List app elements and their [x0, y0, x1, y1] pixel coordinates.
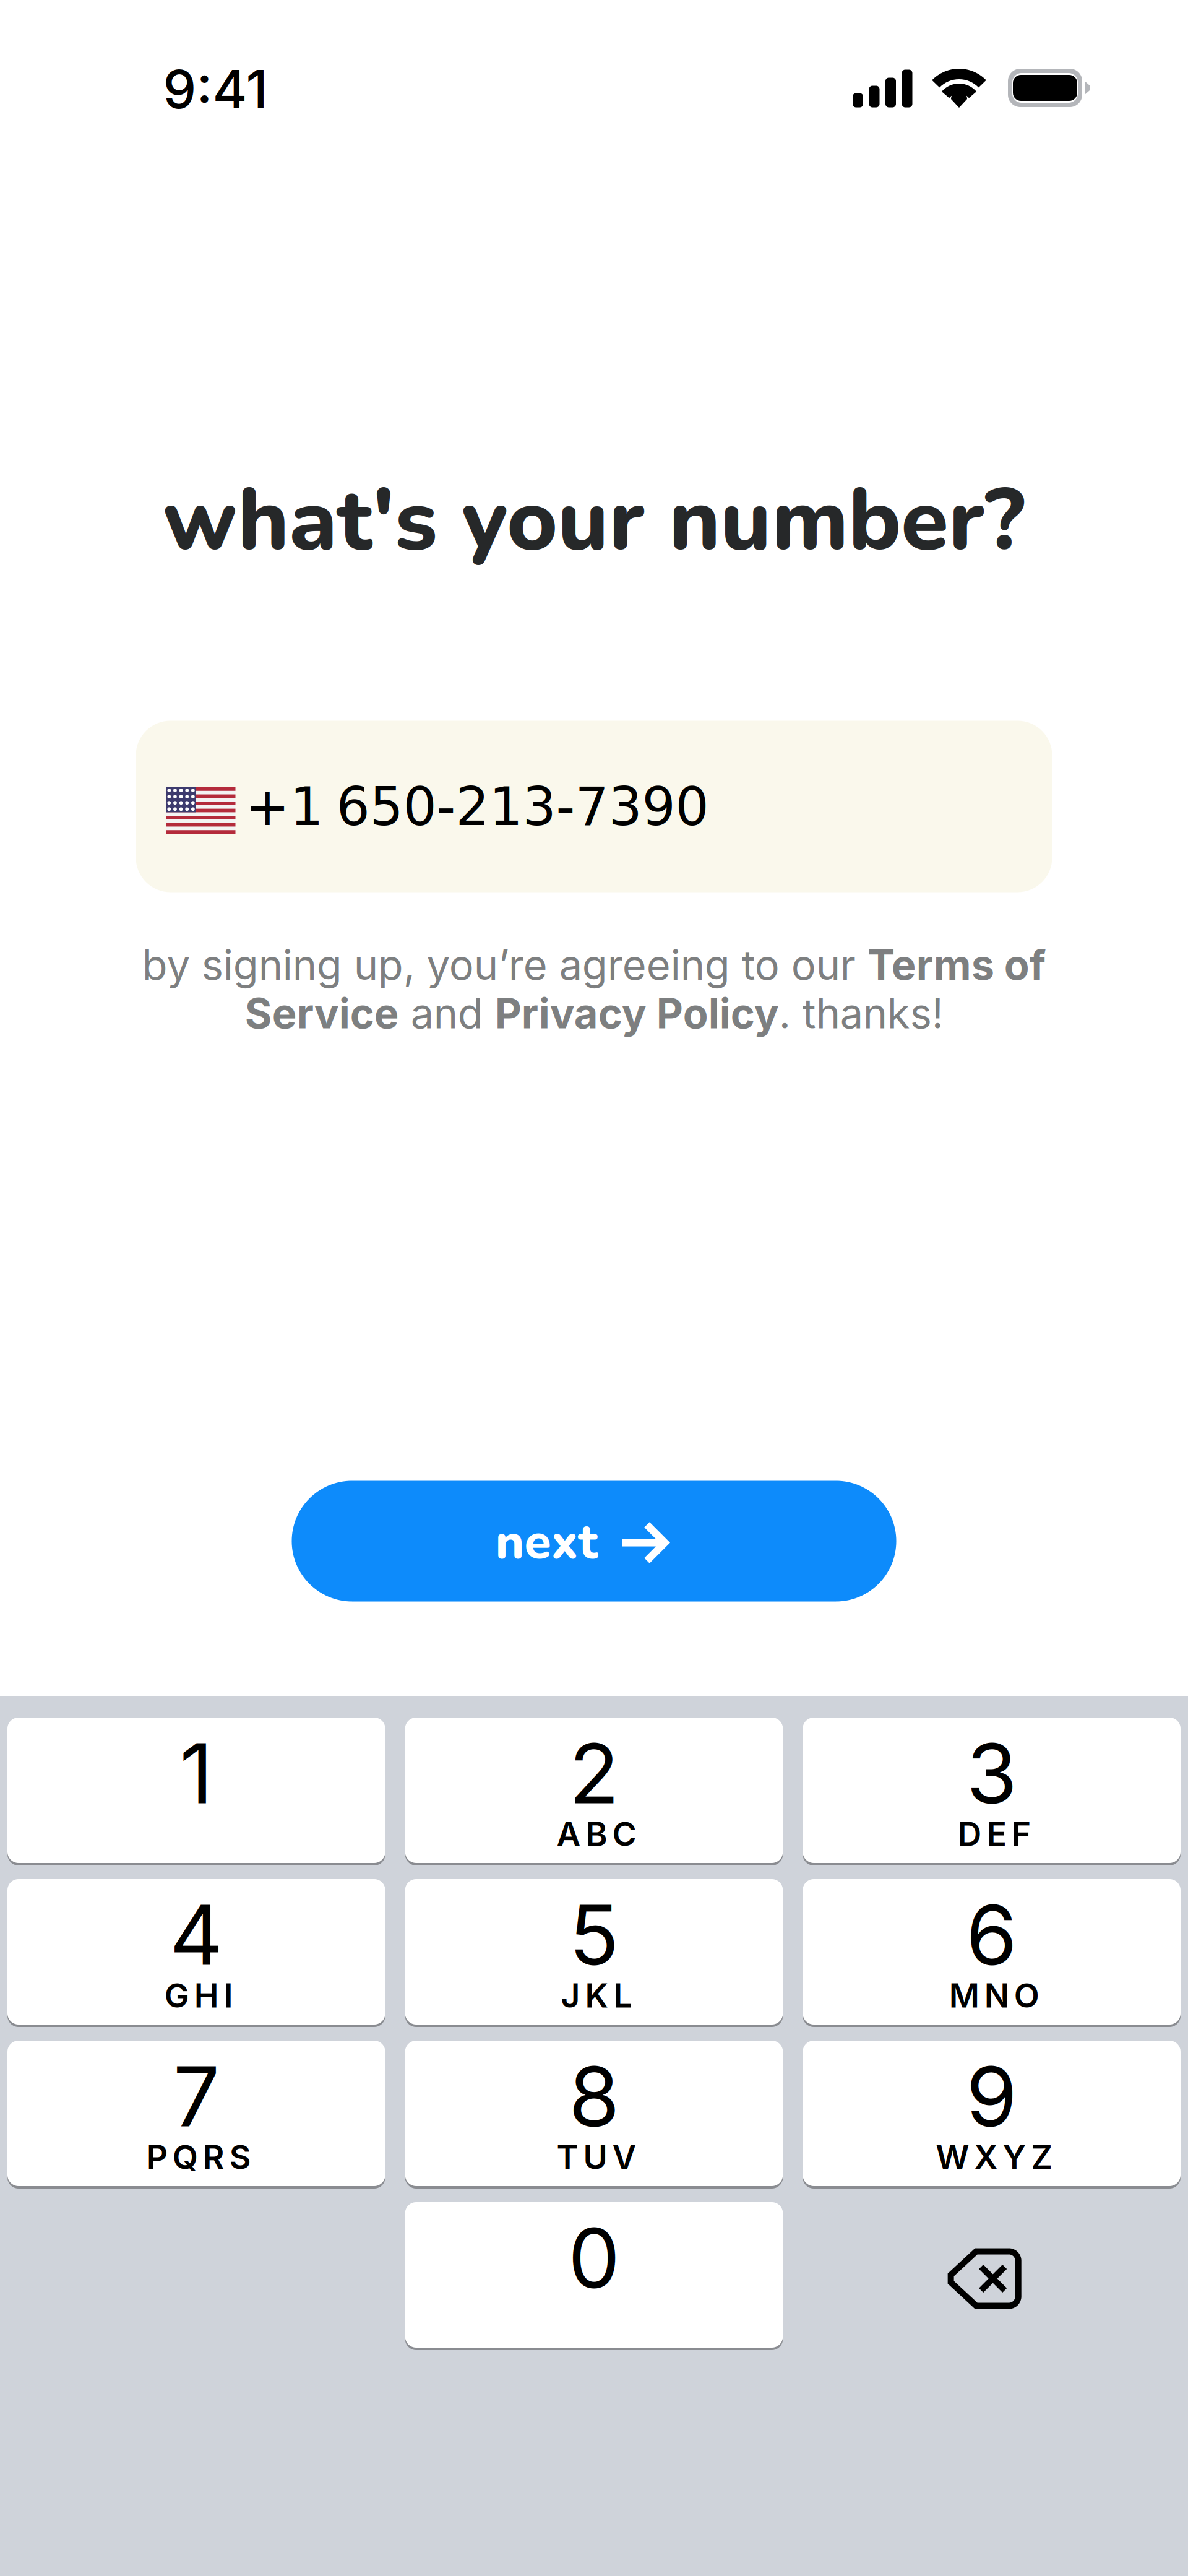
staticText: 3 [966, 1723, 1017, 1823]
button[interactable]: 5 [405, 1879, 783, 2028]
button[interactable]: 8 [405, 2041, 783, 2190]
button[interactable]: 9 [803, 2041, 1181, 2190]
staticText: next [495, 1509, 598, 1575]
button[interactable]: 6 [803, 1879, 1181, 2028]
button[interactable]: Delete [906, 2223, 1060, 2334]
staticText: 2 [569, 1723, 619, 1823]
staticText: 1 [180, 1723, 213, 1823]
staticText: WXYZ [936, 2137, 1053, 2177]
staticText: GHI [164, 1975, 233, 2015]
button[interactable]: 1 [7, 1718, 385, 1867]
staticText: 6 [966, 1885, 1017, 1985]
staticText: 9 [966, 2046, 1017, 2146]
staticText: DEF [958, 1814, 1031, 1854]
staticText: by signing up, you’re agreeing to our Te… [142, 940, 1046, 1038]
staticText: 7 [173, 2046, 220, 2146]
staticText: ABC [557, 1814, 636, 1854]
staticText: 4 [170, 1885, 223, 1985]
staticText: JKL [561, 1975, 632, 2015]
staticText: 5 [569, 1885, 619, 1985]
staticText: what's your number? [163, 461, 1025, 580]
staticText: 8 [569, 2046, 619, 2146]
staticText: +1 [245, 776, 323, 837]
button[interactable]: 4 [7, 1879, 385, 2028]
button[interactable]: 3 [803, 1718, 1181, 1867]
button[interactable]: 7 [7, 2041, 385, 2190]
staticText: 650-213-7390 [336, 776, 709, 837]
staticText: MNO [949, 1975, 1039, 2015]
staticText: 9:41 [163, 57, 268, 121]
staticText: PQRS [147, 2137, 251, 2177]
button[interactable]: next [292, 1481, 896, 1601]
button[interactable]: 2 [405, 1718, 783, 1867]
staticText: 0 [568, 2208, 620, 2308]
button[interactable]: 0 [405, 2202, 783, 2351]
staticText: TUV [557, 2137, 636, 2177]
